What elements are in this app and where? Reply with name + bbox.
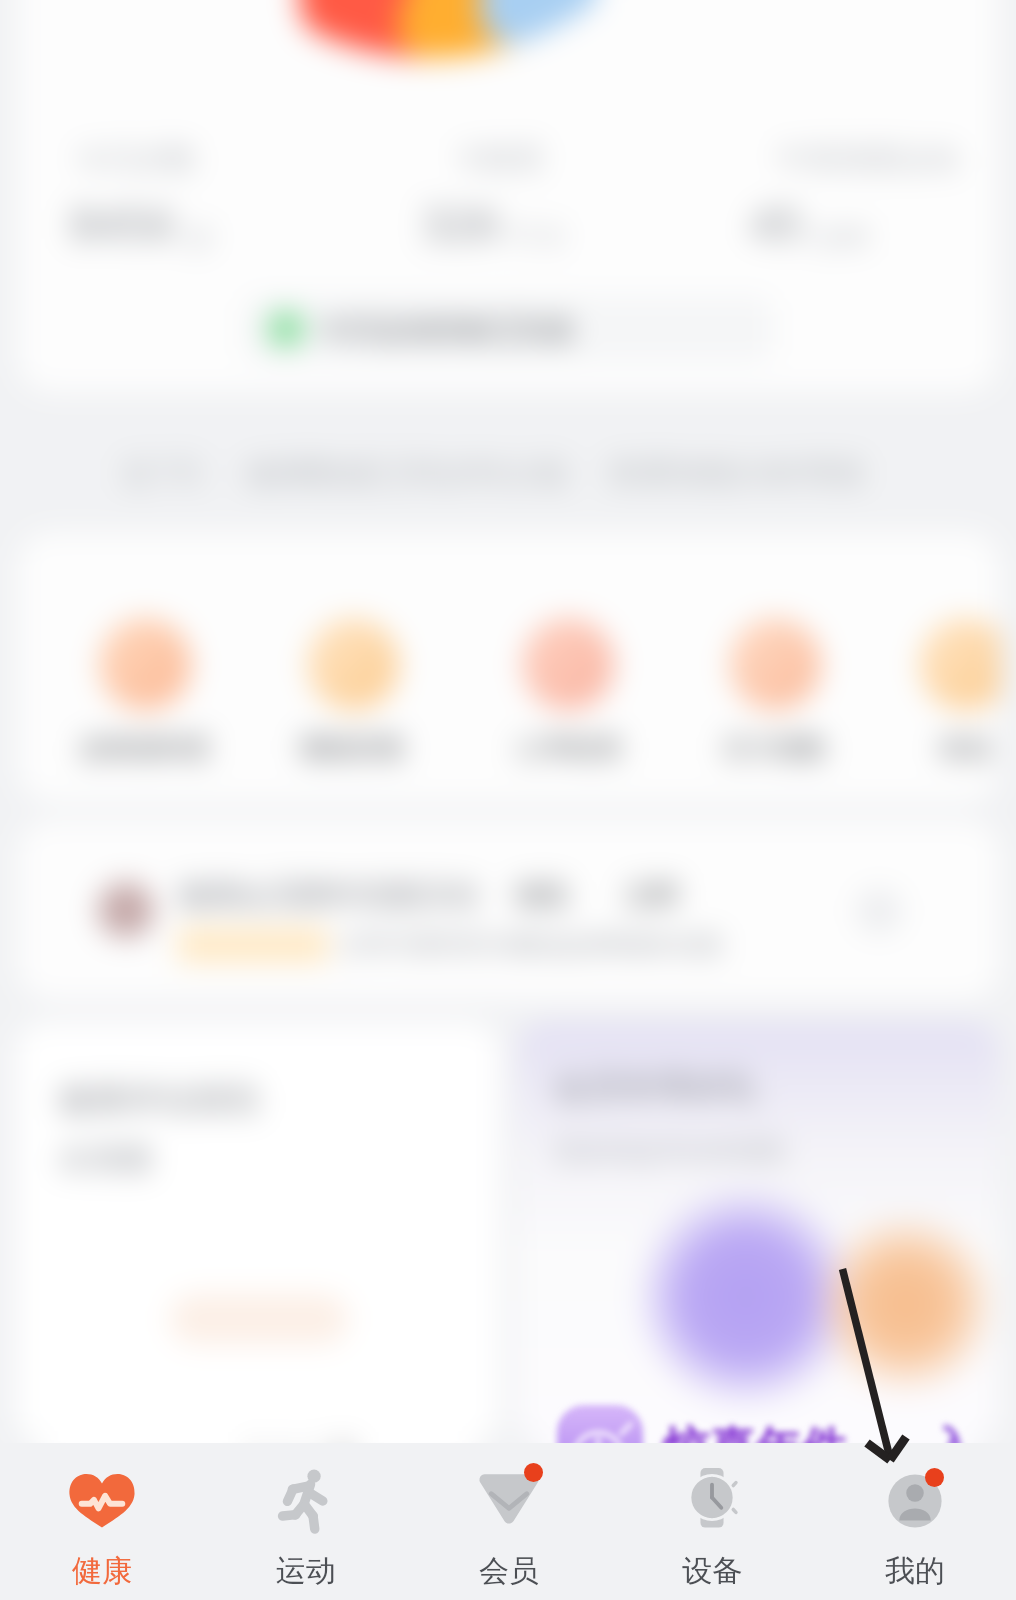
button[interactable]: 运动: [204, 1443, 407, 1600]
staticText: 健康: [72, 1552, 132, 1590]
staticText: 今日运动目标已完成: [320, 312, 572, 347]
button[interactable]: 健康: [0, 1443, 204, 1600]
staticText: 领取: [514, 878, 570, 913]
staticText: 会员: [479, 1552, 539, 1590]
button[interactable]: 会员: [407, 1443, 610, 1600]
staticText: 运动: [276, 1552, 336, 1590]
staticText: 体温: [939, 732, 991, 765]
staticText: 压力指数: [723, 732, 827, 765]
button[interactable]: 设备: [610, 1443, 813, 1600]
staticText: 45: [750, 192, 803, 255]
staticText: 睡眠质量: [301, 732, 405, 765]
staticText: 近7天 · 健康数据已同步到云端 · 查看智能分析周报: [122, 450, 865, 494]
staticText: 我的: [885, 1552, 945, 1590]
staticText: 会员专享好礼: [554, 1066, 758, 1109]
staticText: 健康评估报告: [58, 1078, 262, 1121]
staticText: 心率检测: [516, 732, 620, 765]
staticText: 设备: [682, 1552, 742, 1590]
staticText: 血氧饱和度: [80, 732, 210, 765]
staticText: 入: [929, 1421, 975, 1479]
staticText: 8456: [70, 192, 176, 255]
button[interactable]: 我的: [813, 1443, 1016, 1600]
staticText: 未测量: [58, 1139, 154, 1179]
staticText: 卡路里: [455, 140, 545, 178]
staticText: 立即: [624, 878, 680, 913]
staticText: 2023.11.12 身体改善: [72, 1434, 361, 1443]
staticText: 健康会员限时优惠活动: [178, 876, 478, 914]
staticText: 惊喜年件: [663, 1421, 847, 1479]
staticText: 326: [421, 192, 500, 255]
